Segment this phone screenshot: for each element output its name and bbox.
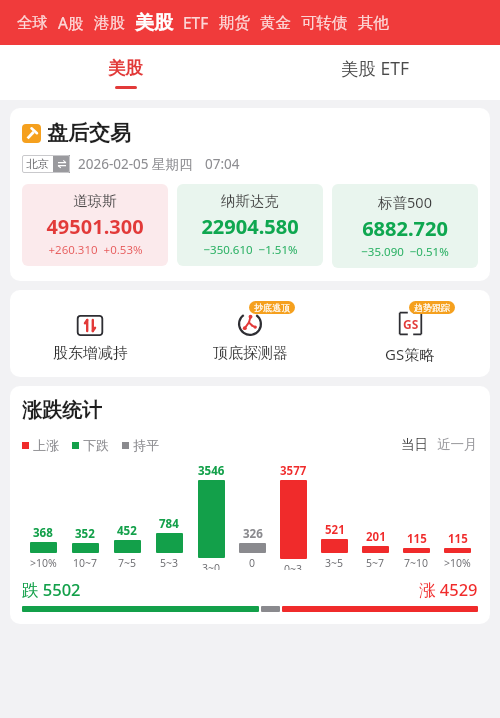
staticText: 784: [159, 516, 179, 532]
staticText: 抄底逃顶: [254, 302, 290, 313]
staticText: 涨 4529: [419, 578, 478, 601]
staticText: 美股 ETF: [341, 56, 410, 80]
staticText: −35.090 −0.51%: [361, 244, 449, 260]
staticText: 521: [325, 522, 345, 538]
staticText: 股东增减持: [53, 344, 128, 363]
staticText: 纳斯达克: [221, 192, 279, 210]
button[interactable]: 其他: [353, 13, 394, 33]
staticText: −350.610 −1.51%: [203, 242, 298, 258]
staticText: 港股: [94, 13, 125, 33]
staticText: 7~10: [404, 556, 429, 570]
staticText: 持平: [133, 437, 159, 453]
staticText: 标普500: [378, 192, 432, 212]
button[interactable]: 标普500: [332, 184, 478, 268]
staticText: 跌 5502: [22, 578, 81, 601]
staticText: GS: [403, 316, 419, 332]
staticText: 下跌: [83, 437, 109, 453]
staticText: 可转债: [301, 13, 348, 33]
staticText: A股: [58, 12, 84, 33]
staticText: 涨跌统计: [22, 398, 102, 423]
staticText: 115: [407, 531, 427, 547]
staticText: >10%: [444, 556, 471, 570]
staticText: 5~7: [366, 556, 385, 570]
staticText: 3546: [198, 463, 225, 479]
staticText: 07:04: [205, 155, 240, 173]
staticText: 全球: [17, 13, 48, 33]
staticText: 期货: [219, 13, 250, 33]
staticText: 当日: [401, 436, 428, 453]
staticText: 近一月: [437, 436, 478, 453]
staticText: 5~3: [160, 556, 179, 570]
button[interactable]: 股东增减持: [10, 303, 170, 363]
staticText: 0: [249, 556, 256, 570]
button[interactable]: ETF: [178, 12, 214, 33]
button[interactable]: 道琼斯: [22, 184, 168, 266]
staticText: ETF: [183, 12, 209, 33]
staticText: >10%: [30, 556, 57, 570]
button[interactable]: 期货: [214, 13, 255, 33]
staticText: 115: [448, 531, 468, 547]
staticText: 黄金: [260, 13, 291, 33]
staticText: 上涨: [33, 437, 59, 453]
button[interactable]: 顶底探测器: [170, 303, 330, 363]
button[interactable]: 全球: [12, 13, 53, 33]
staticText: 美股: [135, 11, 173, 35]
button[interactable]: 近一月: [437, 436, 478, 453]
staticText: 趋势跟踪: [414, 302, 450, 313]
other: 股东增减持: [76, 314, 104, 337]
button[interactable]: 黄金: [255, 13, 296, 33]
staticText: GS策略: [385, 344, 435, 364]
staticText: 368: [33, 525, 53, 541]
staticText: 326: [243, 526, 263, 542]
staticText: 22904.580: [201, 213, 299, 240]
button[interactable]: 美股: [130, 11, 178, 35]
button[interactable]: 纳斯达克: [177, 184, 323, 266]
staticText: 其他: [358, 13, 389, 33]
button[interactable]: 港股: [89, 13, 130, 33]
staticText: 美股: [108, 57, 143, 79]
button[interactable]: 美股 ETF: [250, 45, 500, 100]
button[interactable]: 美股: [0, 45, 250, 100]
button[interactable]: A股: [53, 12, 89, 33]
staticText: 2026-02-05 星期四: [78, 155, 193, 173]
staticText: 3577: [280, 463, 307, 479]
staticText: 盘后交易: [47, 120, 131, 146]
button[interactable]: 可转债: [296, 13, 353, 33]
staticText: 10~7: [73, 556, 98, 570]
button[interactable]: GS策略: [330, 303, 490, 364]
staticText: 3~5: [325, 556, 344, 570]
staticText: 6882.720: [362, 215, 448, 242]
staticText: 49501.300: [46, 213, 144, 240]
staticText: 201: [366, 529, 386, 545]
other: 顶底探测器: [237, 311, 263, 337]
staticText: 道琼斯: [73, 192, 117, 210]
staticText: 352: [75, 526, 95, 542]
button[interactable]: 当日: [401, 436, 428, 453]
button[interactable]: 北京: [22, 155, 70, 173]
staticText: 北京: [26, 157, 49, 171]
staticText: 顶底探测器: [213, 344, 288, 363]
staticText: 452: [117, 523, 137, 539]
staticText: 0~3: [284, 562, 303, 570]
other: GS策略: [397, 310, 424, 337]
staticText: 7~5: [118, 556, 137, 570]
staticText: +260.310 +0.53%: [48, 242, 143, 258]
staticText: 3~0: [202, 561, 221, 570]
